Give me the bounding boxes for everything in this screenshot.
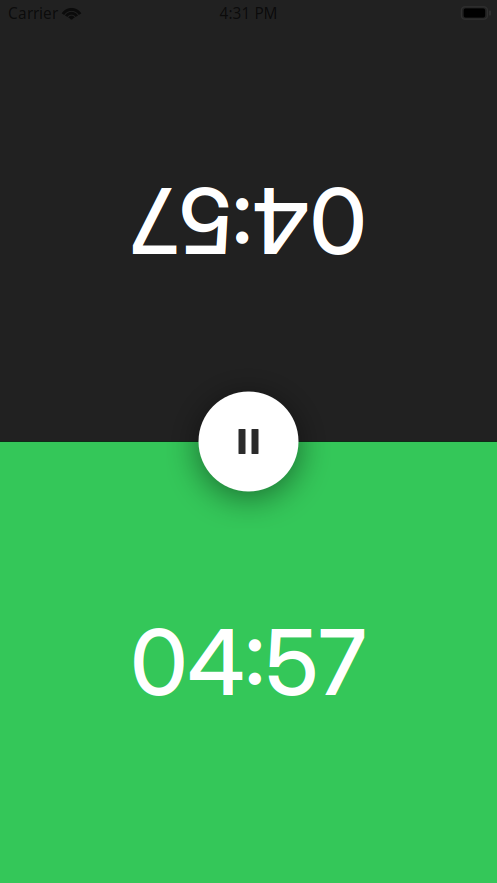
staticText: 04:57 xyxy=(130,166,366,276)
staticText: 04:57 xyxy=(130,607,366,717)
button[interactable]: Pause xyxy=(198,391,298,491)
staticText: Carrier xyxy=(8,3,58,23)
staticText: 4:31 PM xyxy=(219,3,277,23)
button[interactable]: Player two clock xyxy=(0,442,497,883)
button[interactable]: Player one clock xyxy=(0,0,497,441)
